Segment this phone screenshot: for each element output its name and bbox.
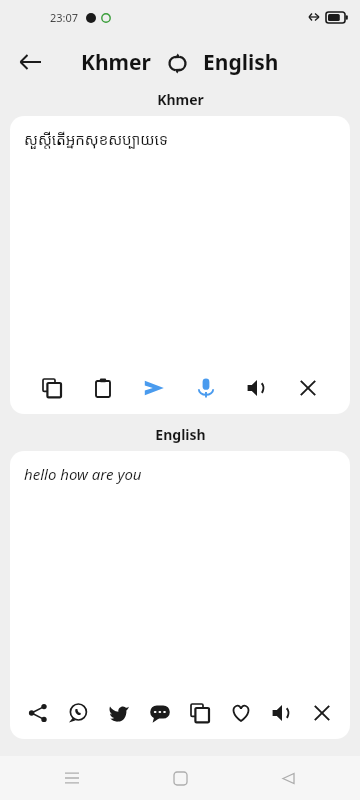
button[interactable]: Translate	[137, 371, 171, 405]
button[interactable]: Share on WhatsApp	[61, 696, 95, 730]
button[interactable]: Share	[21, 696, 55, 730]
staticText: English	[155, 425, 206, 444]
staticText: សួស្តីតើអ្នកសុខសប្បាយទេ	[24, 129, 168, 149]
button[interactable]: Send SMS	[143, 696, 177, 730]
button[interactable]: Swap languages	[162, 48, 192, 78]
button[interactable]: Speak	[240, 371, 274, 405]
staticText: 23:07	[50, 10, 79, 25]
button[interactable]: Voice input	[189, 371, 223, 405]
button[interactable]: Speak	[265, 696, 299, 730]
button[interactable]: Add to favorites	[224, 696, 258, 730]
button[interactable]: Recent apps	[52, 758, 92, 798]
button[interactable]: Copy	[183, 696, 217, 730]
button[interactable]: Paste	[86, 371, 120, 405]
staticText: Khmer	[157, 90, 204, 109]
staticText: hello how are you	[24, 464, 142, 484]
button[interactable]: Close	[305, 696, 339, 730]
button[interactable]: Home	[160, 758, 200, 798]
button[interactable]: Share on Twitter	[102, 696, 136, 730]
button[interactable]: Copy	[35, 371, 69, 405]
staticText: English	[203, 48, 279, 77]
staticText: Khmer	[81, 48, 151, 77]
button[interactable]: Khmer	[78, 46, 154, 79]
button[interactable]: English	[200, 46, 282, 79]
button[interactable]: Back	[268, 758, 308, 798]
button[interactable]: Clear	[291, 371, 325, 405]
button[interactable]: Back	[8, 40, 52, 84]
